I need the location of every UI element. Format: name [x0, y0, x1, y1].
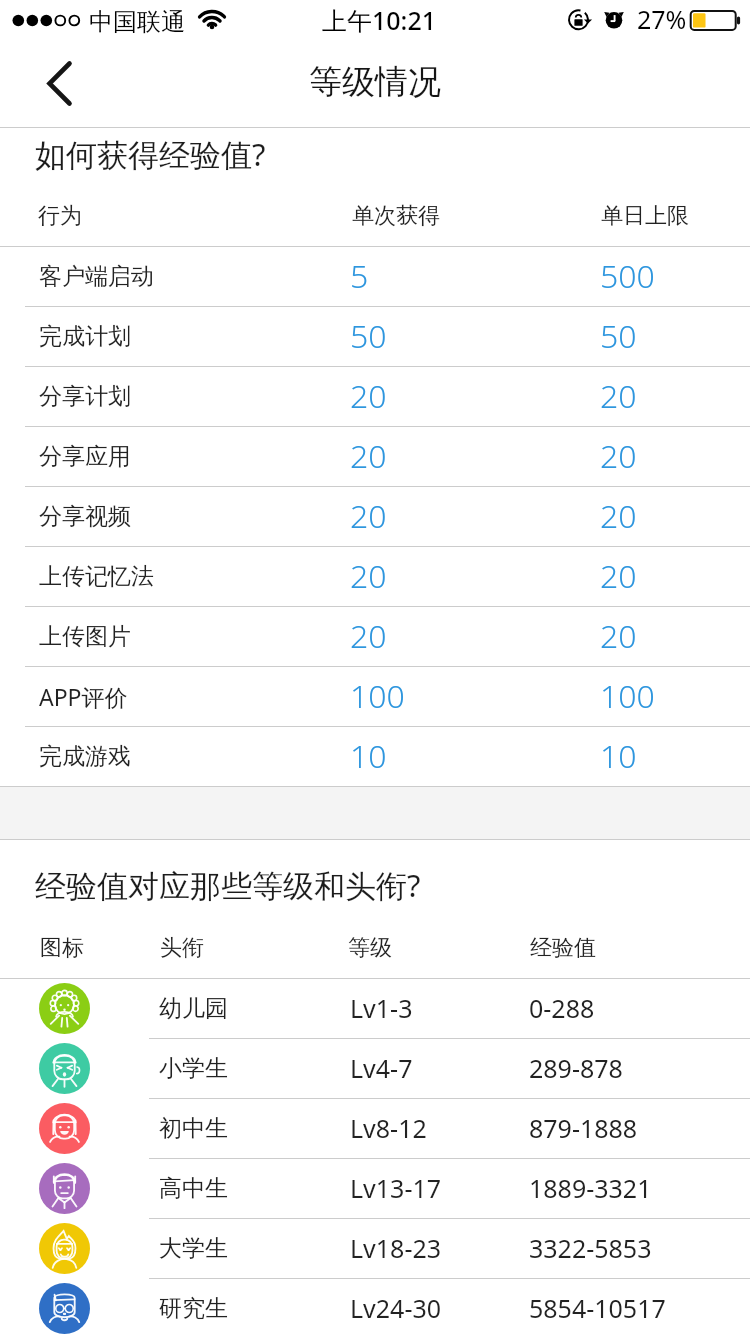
staticText: Lv13-17	[350, 1171, 442, 1205]
staticText: 20	[600, 554, 637, 598]
staticText: 完成计划	[39, 322, 131, 351]
staticText: 500	[600, 254, 655, 298]
staticText: 3322-5853	[529, 1231, 652, 1265]
button[interactable]: 上传记忆法	[0, 546, 750, 606]
button[interactable]: 大学生	[0, 1218, 750, 1278]
staticText: 等级	[348, 934, 392, 962]
staticText: 20	[600, 614, 637, 658]
staticText: 20	[350, 494, 387, 538]
staticText: Lv8-12	[350, 1111, 427, 1145]
staticText: 20	[350, 554, 387, 598]
staticText: 小学生	[159, 1054, 228, 1083]
button[interactable]: 分享应用	[0, 426, 750, 486]
staticText: 879-1888	[529, 1111, 638, 1145]
staticText: 研究生	[159, 1294, 228, 1323]
staticText: 10	[350, 734, 387, 778]
staticText: 100	[350, 674, 405, 718]
staticText: 幼儿园	[159, 994, 228, 1023]
button[interactable]: 分享计划	[0, 366, 750, 426]
button[interactable]: 完成计划	[0, 306, 750, 366]
staticText: Lv18-23	[350, 1231, 442, 1265]
staticText: 如何获得经验值?	[35, 133, 266, 175]
staticText: APP评价	[39, 681, 128, 712]
button[interactable]: 小学生	[0, 1038, 750, 1098]
button[interactable]: Back	[0, 45, 110, 127]
staticText: 分享应用	[39, 442, 131, 471]
button[interactable]: 初中生	[0, 1098, 750, 1158]
staticText: 10	[600, 734, 637, 778]
button[interactable]: APP评价	[0, 666, 750, 726]
button[interactable]: 研究生	[0, 1278, 750, 1334]
staticText: 1889-3321	[529, 1171, 652, 1205]
staticText: 完成游戏	[39, 742, 131, 771]
staticText: 高中生	[159, 1174, 228, 1203]
staticText: 0-288	[529, 991, 595, 1025]
staticText: 5854-10517	[529, 1291, 666, 1325]
staticText: 上传记忆法	[39, 562, 154, 591]
button[interactable]: 客户端启动	[0, 246, 750, 306]
staticText: Lv1-3	[350, 991, 413, 1025]
staticText: Lv24-30	[350, 1291, 442, 1325]
button[interactable]: 幼儿园	[0, 978, 750, 1038]
staticText: 20	[600, 374, 637, 418]
staticText: 经验值	[530, 934, 596, 962]
button[interactable]: 上传图片	[0, 606, 750, 666]
staticText: 头衔	[160, 934, 204, 962]
staticText: 行为	[38, 202, 82, 230]
staticText: 20	[350, 434, 387, 478]
staticText: 分享计划	[39, 382, 131, 411]
staticText: 单次获得	[352, 202, 440, 230]
button[interactable]: 完成游戏	[0, 726, 750, 786]
staticText: 客户端启动	[39, 262, 154, 291]
staticText: 大学生	[159, 1234, 228, 1263]
staticText: 100	[600, 674, 655, 718]
staticText: 上午10:21	[322, 3, 437, 37]
staticText: Lv4-7	[350, 1051, 413, 1085]
staticText: 图标	[40, 934, 84, 962]
staticText: 50	[350, 314, 387, 358]
staticText: 分享视频	[39, 502, 131, 531]
staticText: 289-878	[529, 1051, 623, 1085]
staticText: 上传图片	[39, 622, 131, 651]
staticText: 20	[350, 614, 387, 658]
staticText: 经验值对应那些等级和头衔?	[35, 864, 421, 906]
staticText: 5	[350, 254, 369, 298]
staticText: 20	[600, 434, 637, 478]
staticText: 等级情况	[309, 61, 441, 103]
staticText: 初中生	[159, 1114, 228, 1143]
staticText: 20	[350, 374, 387, 418]
button[interactable]: 高中生	[0, 1158, 750, 1218]
staticText: 中国联通	[89, 7, 185, 37]
staticText: 27%	[637, 2, 687, 36]
staticText: 单日上限	[601, 202, 689, 230]
staticText: 50	[600, 314, 637, 358]
button[interactable]: 分享视频	[0, 486, 750, 546]
staticText: 20	[600, 494, 637, 538]
